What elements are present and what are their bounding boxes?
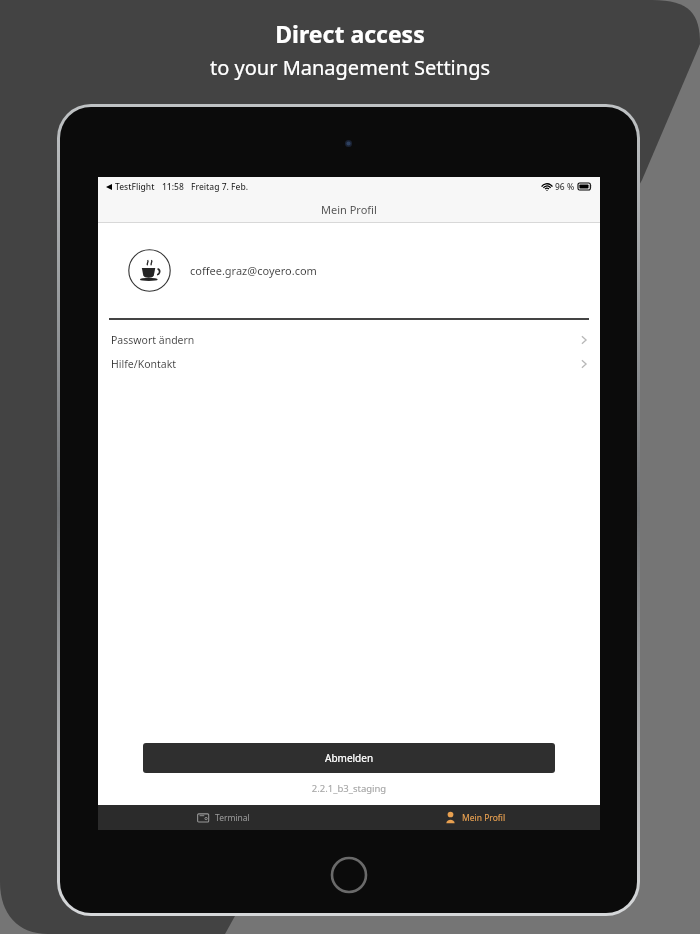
button[interactable]: Hilfe/Kontakt — [98, 352, 600, 376]
staticText: 2.2.1_b3_staging — [98, 782, 600, 795]
button[interactable]: Home — [330, 856, 368, 894]
button[interactable]: Abmelden — [143, 743, 555, 773]
button[interactable]: Terminal — [98, 805, 349, 830]
staticText: TestFlight — [115, 181, 155, 193]
staticText: coffee.graz@coyero.com — [190, 263, 317, 278]
staticText: to your Management Settings — [0, 54, 700, 81]
button[interactable]: Passwort ändern — [98, 328, 600, 352]
staticText: Hilfe/Kontakt — [111, 357, 177, 371]
staticText: Direct access — [0, 18, 700, 49]
staticText: Abmelden — [325, 751, 374, 765]
button[interactable]: Mein Profil — [349, 805, 600, 830]
staticText: Mein Profil — [321, 202, 377, 217]
staticText: Terminal — [215, 812, 250, 824]
staticText: 96 % — [555, 181, 575, 193]
staticText: Freitag 7. Feb. — [191, 181, 249, 193]
staticText: 11:58 — [162, 181, 184, 193]
staticText: Mein Profil — [462, 812, 506, 824]
staticText: Passwort ändern — [111, 333, 195, 347]
